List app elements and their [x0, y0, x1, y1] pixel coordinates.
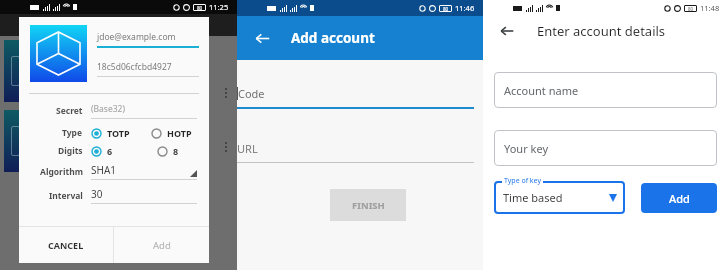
staticText: 11:25 [209, 2, 229, 12]
staticText: HOTP [167, 127, 192, 139]
staticText: Account name [504, 83, 579, 98]
staticText: 80 [443, 6, 449, 12]
staticText: Add [669, 191, 690, 206]
staticText: Time based [503, 190, 563, 205]
staticText: Your key [504, 141, 548, 156]
staticText: 18c5d06cfcbd4927 [97, 61, 172, 73]
button[interactable]: jdoe@example.com [97, 31, 199, 48]
button[interactable]: FINISH [330, 189, 406, 221]
staticText: 11:46 [455, 3, 475, 13]
button[interactable] [151, 128, 162, 139]
staticText: jdoe@example.com [97, 31, 176, 43]
staticText: CANCEL [48, 239, 84, 251]
button[interactable]: 18c5d06cfcbd4927 [97, 61, 199, 77]
staticText: 80 [197, 5, 203, 11]
button[interactable]: URL [237, 141, 474, 163]
button[interactable]: Account name [494, 72, 717, 108]
button[interactable]: Add [641, 183, 717, 213]
staticText: 8 [173, 145, 179, 157]
button[interactable] [157, 146, 168, 157]
staticText: Type [62, 127, 83, 139]
staticText: Interval [49, 190, 83, 202]
staticText: SHA1 [91, 163, 117, 177]
button[interactable]: Back [495, 19, 519, 43]
staticText: 80 [688, 6, 694, 12]
button[interactable]: Add [114, 227, 209, 263]
button[interactable] [91, 146, 102, 157]
staticText: 11:48 [700, 3, 720, 13]
button[interactable] [91, 128, 102, 139]
staticText: Add account [291, 29, 375, 47]
button[interactable]: CANCEL [19, 227, 113, 263]
staticText: Algorithm [40, 166, 83, 178]
staticText: Secret [56, 105, 83, 117]
staticText: 30 [91, 187, 103, 201]
staticText: URL [237, 141, 258, 156]
staticText: Code [238, 86, 265, 101]
staticText: Enter account details [537, 22, 666, 40]
staticText: Digits [58, 145, 83, 157]
button[interactable]: Code [237, 86, 474, 109]
staticText: FINISH [352, 199, 385, 212]
staticText: TOTP [107, 127, 130, 139]
staticText: (Base32) [91, 103, 125, 115]
button[interactable]: Your key [494, 130, 717, 166]
staticText: Add [153, 239, 171, 252]
button[interactable]: SHA1 [91, 163, 197, 180]
staticText: Type of key [504, 176, 541, 186]
button[interactable]: Back [249, 25, 275, 51]
button[interactable]: Time based [494, 181, 625, 214]
staticText: 6 [107, 145, 113, 157]
